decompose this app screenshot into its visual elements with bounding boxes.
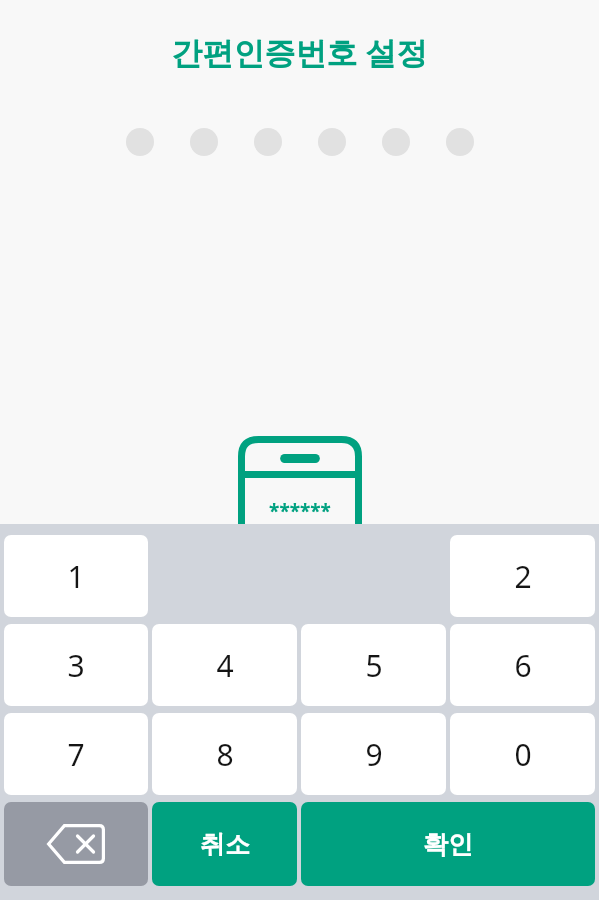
button[interactable]: 0 [450, 713, 595, 795]
button[interactable]: 2 [450, 535, 595, 617]
staticText: 8 [216, 734, 234, 775]
button[interactable]: 7 [4, 713, 148, 795]
staticText: 9 [365, 734, 383, 775]
staticText: 0 [514, 734, 532, 775]
button[interactable]: 확인 [301, 802, 595, 886]
staticText: 5 [365, 645, 383, 686]
button[interactable]: 6 [450, 624, 595, 706]
staticText: 1 [67, 556, 85, 597]
staticText: 3 [67, 645, 85, 686]
button[interactable]: 5 [301, 624, 446, 706]
button[interactable]: Backspace [4, 802, 148, 886]
staticText: 간편인증번호 설정 [171, 31, 428, 73]
button[interactable]: 1 [4, 535, 148, 617]
staticText: 확인 [423, 829, 473, 860]
staticText: 취소 [200, 829, 250, 860]
staticText: 6 [514, 645, 532, 686]
button[interactable]: 8 [152, 713, 297, 795]
button[interactable]: 9 [301, 713, 446, 795]
button[interactable]: 취소 [152, 802, 297, 886]
staticText: ****** [269, 498, 331, 524]
button[interactable]: 3 [4, 624, 148, 706]
staticText: 2 [514, 556, 532, 597]
button[interactable]: 4 [152, 624, 297, 706]
staticText: 7 [67, 734, 85, 775]
staticText: 4 [216, 645, 234, 686]
